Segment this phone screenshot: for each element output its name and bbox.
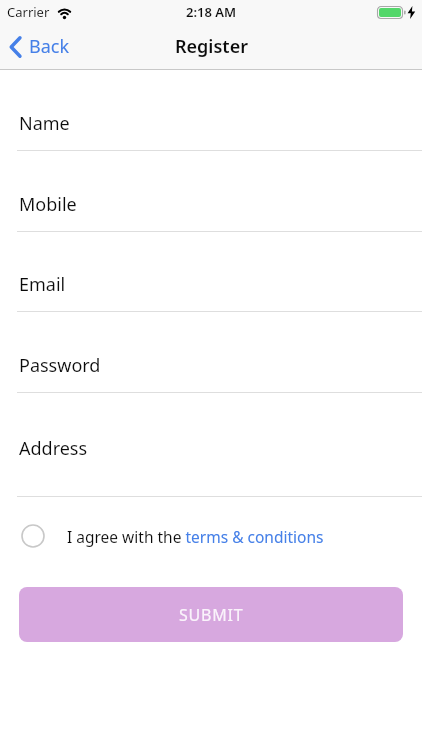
staticText: SUBMIT [179,604,244,626]
button[interactable]: Back [9,34,70,59]
staticText: Name [19,111,70,136]
button[interactable]: I agree with the terms & conditions [21,524,324,548]
staticText: Back [29,34,70,59]
staticText: Mobile [19,192,77,217]
staticText: Email [19,272,66,297]
staticText: Address [19,436,88,461]
staticText: 2:18 AM [186,3,237,21]
staticText: Register [175,34,248,59]
button[interactable]: SUBMIT [19,587,403,642]
staticText: Carrier [7,3,50,21]
staticText: I agree with the terms & conditions [67,526,324,547]
staticText: Password [19,353,101,378]
